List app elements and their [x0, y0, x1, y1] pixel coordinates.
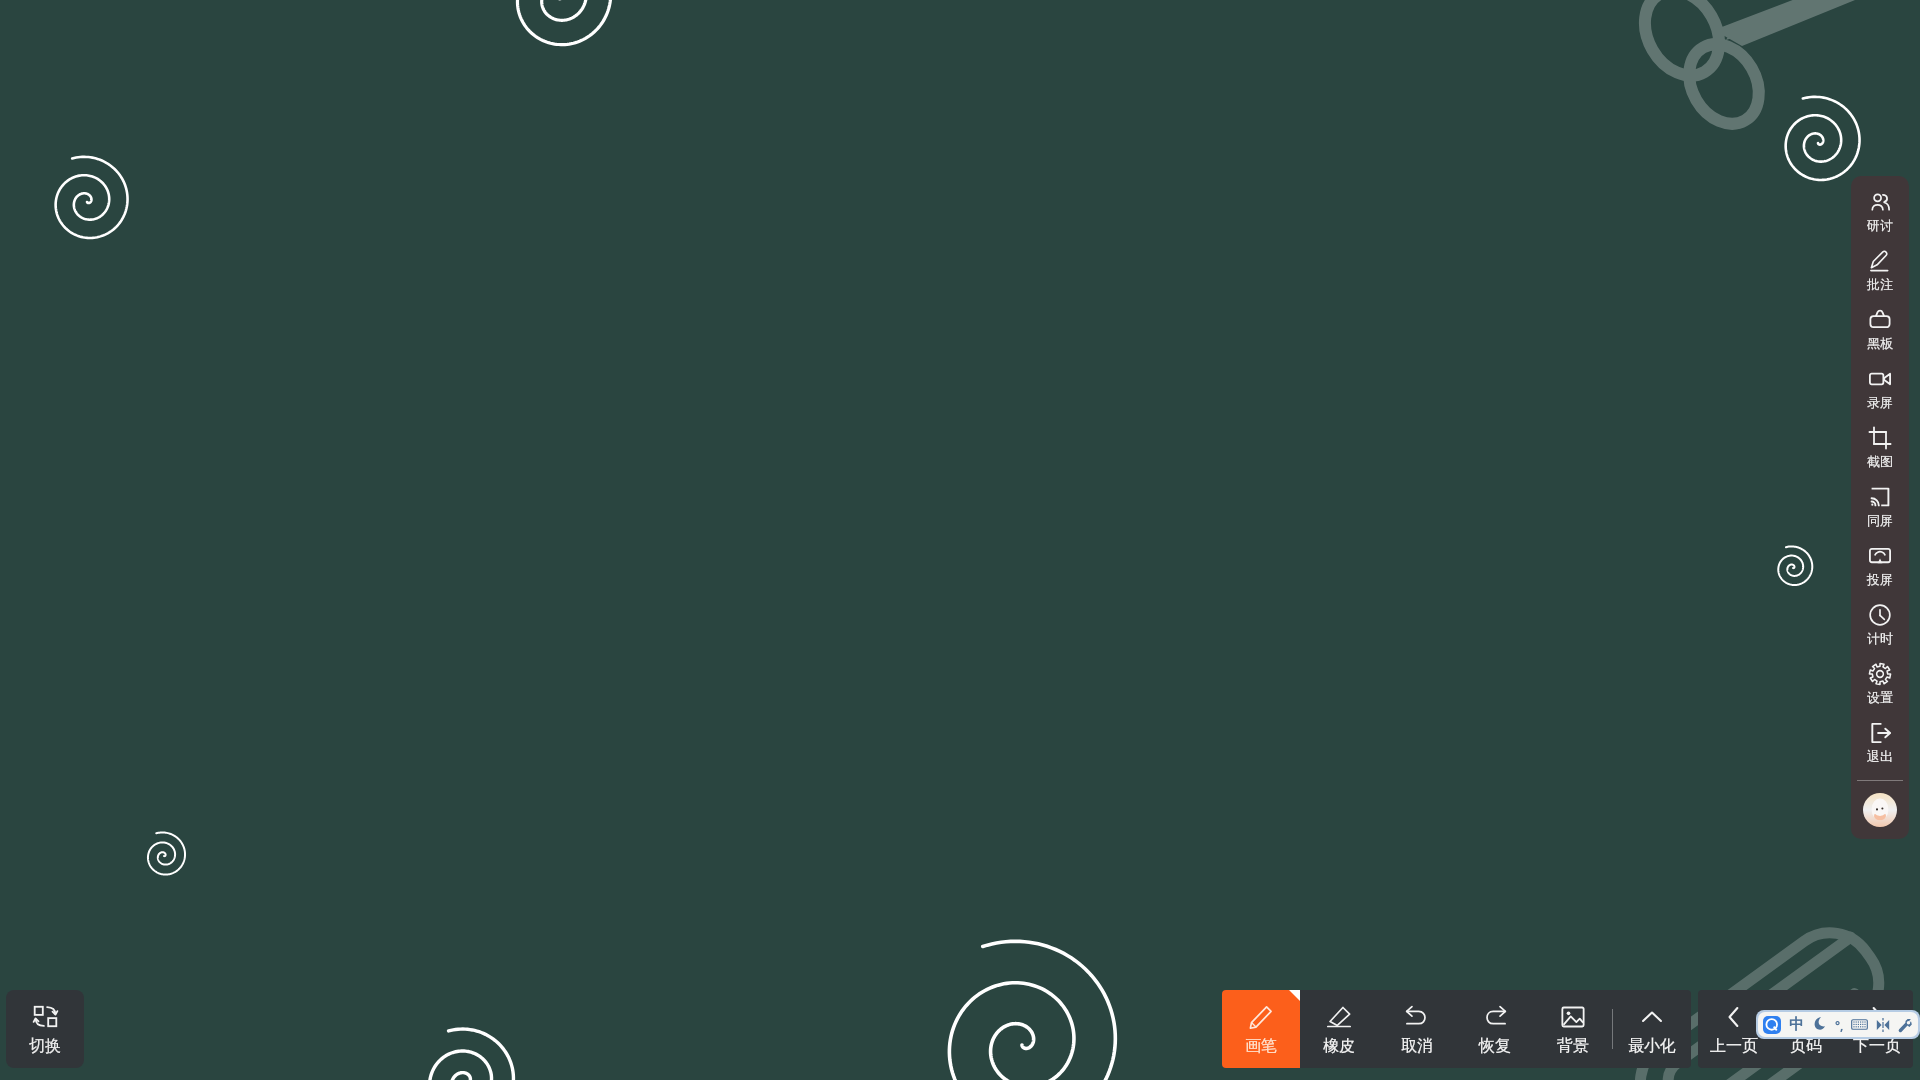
other: Timer: [1868, 603, 1892, 627]
button[interactable]: QQ input method: [1763, 1016, 1781, 1034]
staticText: 页码: [1790, 1036, 1822, 1056]
staticText: 下一页: [1853, 1036, 1901, 1056]
other: Project: [1868, 544, 1892, 568]
button[interactable]: 背景: [1534, 990, 1612, 1068]
other: Screen share: [1868, 485, 1892, 509]
button[interactable]: 画笔: [1222, 990, 1300, 1068]
button[interactable]: 中: [1789, 1015, 1804, 1034]
staticText: 上一页: [1710, 1036, 1758, 1056]
button[interactable]: 取消: [1378, 990, 1456, 1068]
button[interactable]: °,: [1835, 1017, 1844, 1033]
button[interactable]: Night mode: [1812, 1017, 1827, 1032]
other: Screenshot: [1868, 426, 1892, 450]
staticText: 切换: [29, 1036, 61, 1056]
button[interactable]: Keyboard: [1851, 1016, 1868, 1033]
button[interactable]: Profile: [1863, 793, 1897, 827]
button[interactable]: Exit: [1851, 711, 1909, 770]
staticText: 取消: [1401, 1036, 1433, 1056]
staticText: 研讨: [1867, 217, 1893, 233]
other: Record screen: [1868, 367, 1892, 391]
staticText: 同屏: [1867, 512, 1893, 528]
button[interactable]: Switch layout: [1876, 1018, 1890, 1032]
button[interactable]: 下一页: [1841, 990, 1913, 1068]
button[interactable]: Discuss: [1851, 180, 1909, 239]
button[interactable]: Settings: [1851, 652, 1909, 711]
button[interactable]: IME settings: [1898, 1017, 1913, 1032]
staticText: 最小化: [1628, 1036, 1676, 1056]
button[interactable]: Switch mode: [6, 990, 84, 1068]
button[interactable]: Annotate: [1851, 239, 1909, 298]
button[interactable]: Blackboard: [1851, 298, 1909, 357]
staticText: 录屏: [1867, 394, 1893, 410]
other: Discuss: [1868, 190, 1892, 214]
staticText: °,: [1835, 1017, 1844, 1033]
staticText: 计时: [1867, 630, 1893, 646]
staticText: 投屏: [1867, 571, 1893, 587]
staticText: 退出: [1867, 748, 1893, 764]
other: Blackboard: [1868, 308, 1892, 332]
staticText: 黑板: [1867, 335, 1893, 351]
other: Annotate: [1868, 249, 1892, 273]
staticText: 设置: [1867, 689, 1893, 705]
button[interactable]: 上一页: [1698, 990, 1770, 1068]
button[interactable]: Project: [1851, 534, 1909, 593]
button[interactable]: Screenshot: [1851, 416, 1909, 475]
staticText: 画笔: [1245, 1036, 1277, 1056]
button[interactable]: Timer: [1851, 593, 1909, 652]
button[interactable]: 最小化: [1613, 990, 1691, 1068]
button[interactable]: 恢复: [1456, 990, 1534, 1068]
staticText: 背景: [1557, 1036, 1589, 1056]
staticText: 批注: [1867, 276, 1893, 292]
other: Exit: [1868, 721, 1892, 745]
button[interactable]: 页码: [1770, 990, 1841, 1068]
staticText: 中: [1789, 1015, 1804, 1034]
button[interactable]: Record screen: [1851, 357, 1909, 416]
other: Switch mode: [32, 1003, 59, 1030]
staticText: 橡皮: [1323, 1036, 1355, 1056]
other: Settings: [1868, 662, 1892, 686]
button[interactable]: Screen share: [1851, 475, 1909, 534]
staticText: 恢复: [1479, 1036, 1511, 1056]
staticText: 截图: [1867, 453, 1893, 469]
button[interactable]: 橡皮: [1300, 990, 1378, 1068]
